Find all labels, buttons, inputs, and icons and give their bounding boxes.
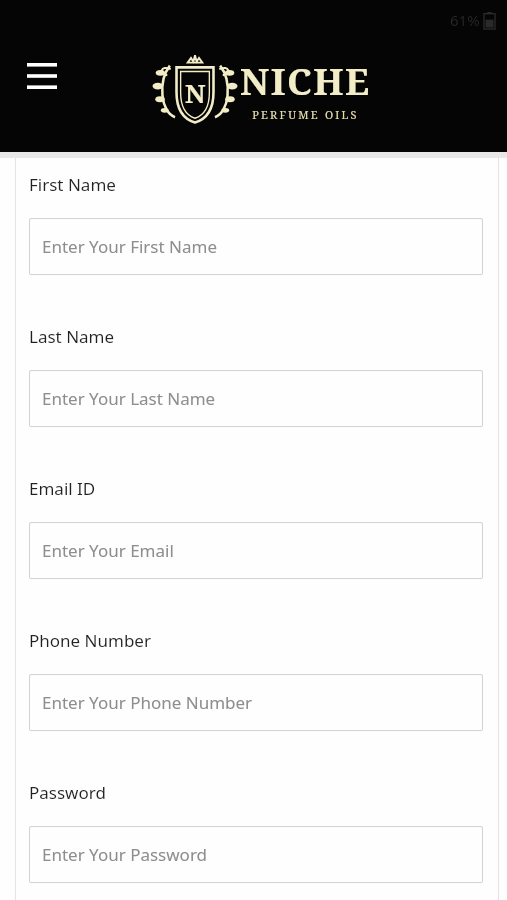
staticText: 61% xyxy=(450,10,480,30)
button[interactable]: Enter Your Password xyxy=(29,826,483,883)
button[interactable]: Open navigation menu xyxy=(18,52,66,100)
button[interactable]: Enter Your First Name xyxy=(29,218,483,275)
staticText: Enter Your Last Name xyxy=(42,387,216,410)
button[interactable]: Enter Your Phone Number xyxy=(29,674,483,731)
staticText: Enter Your Password xyxy=(42,843,208,866)
button[interactable]: Niche Perfume Oils home xyxy=(152,45,371,131)
staticText: Phone Number xyxy=(29,629,151,652)
button[interactable]: Enter Your Email xyxy=(29,522,483,579)
button[interactable]: Enter Your Last Name xyxy=(29,370,483,427)
staticText: N xyxy=(185,75,206,110)
staticText: Enter Your First Name xyxy=(42,235,217,258)
staticText: Password xyxy=(29,781,106,804)
staticText: First Name xyxy=(29,173,116,196)
staticText: Enter Your Email xyxy=(42,539,174,562)
staticText: PERFUME OILS xyxy=(252,107,359,122)
staticText: Enter Your Phone Number xyxy=(42,691,253,714)
staticText: Email ID xyxy=(29,477,96,500)
staticText: NICHE xyxy=(240,55,371,105)
staticText: Last Name xyxy=(29,325,115,348)
